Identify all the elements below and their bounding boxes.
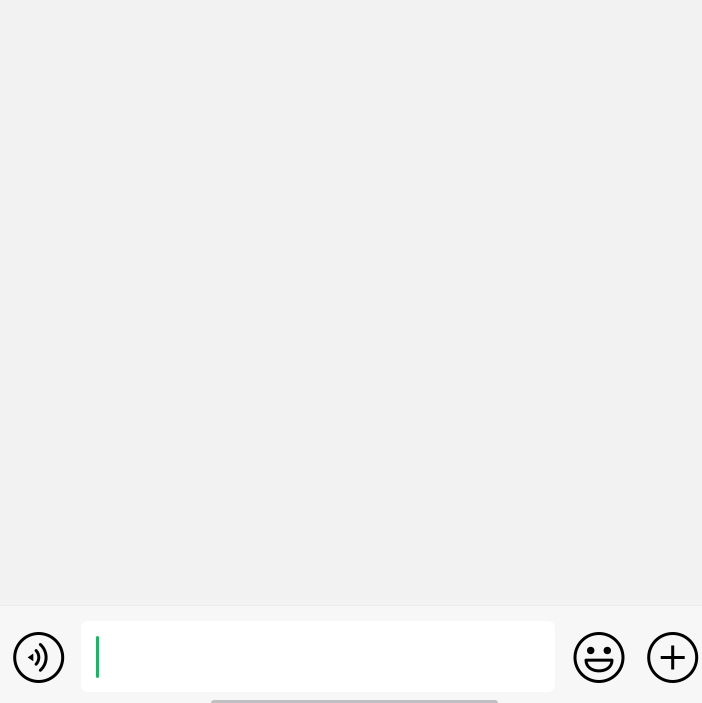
button[interactable]: Emoji — [563, 606, 635, 703]
button[interactable]: Message — [81, 621, 555, 692]
button[interactable]: More — [640, 606, 702, 703]
button[interactable]: Voice message — [0, 606, 78, 703]
